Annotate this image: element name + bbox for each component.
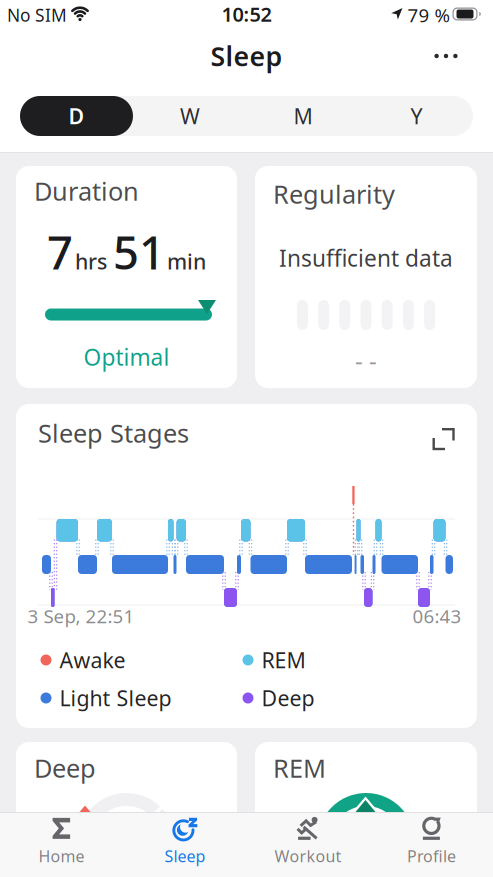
staticText: Deep (261, 684, 314, 712)
staticText: 7 (47, 222, 73, 282)
staticText: hrs (75, 247, 107, 275)
staticText: Duration (34, 174, 139, 208)
staticText: Workout (275, 845, 342, 867)
staticText: Sleep (210, 38, 282, 74)
staticText: REM (273, 751, 326, 785)
staticText: Y (410, 102, 422, 130)
staticText: W (180, 102, 200, 130)
staticText: 79 % (407, 3, 450, 27)
staticText: D (68, 102, 84, 130)
staticText: 51 (113, 222, 165, 282)
staticText: Profile (407, 845, 456, 867)
staticText: Awake (59, 646, 125, 674)
staticText: - - (355, 344, 377, 376)
staticText: 3 Sep, 22:51 (27, 604, 134, 628)
staticText: 06:43 (412, 604, 461, 628)
button[interactable]: D (20, 96, 133, 136)
staticText: Regularity (273, 177, 395, 211)
button[interactable]: Y (360, 96, 473, 136)
button[interactable]: More (426, 41, 466, 71)
button[interactable]: Profile (386, 816, 476, 866)
staticText: M (294, 102, 313, 130)
button[interactable]: Expand (432, 428, 454, 450)
button[interactable]: Workout (263, 816, 353, 866)
staticText: Optimal (83, 342, 169, 372)
button[interactable]: W (133, 96, 246, 136)
staticText: Insufficient data (279, 243, 453, 273)
staticText: REM (261, 646, 305, 674)
button[interactable]: Sleep (140, 816, 230, 866)
staticText: 10:52 (221, 1, 271, 27)
staticText: Home (39, 845, 85, 867)
staticText: No SIM (7, 3, 67, 26)
staticText: Light Sleep (59, 684, 171, 712)
staticText: min (167, 247, 206, 275)
button[interactable]: M (247, 96, 360, 136)
staticText: Deep (34, 751, 96, 785)
button[interactable]: Home (17, 816, 107, 866)
staticText: Sleep Stages (38, 416, 189, 450)
staticText: Sleep (164, 845, 205, 867)
